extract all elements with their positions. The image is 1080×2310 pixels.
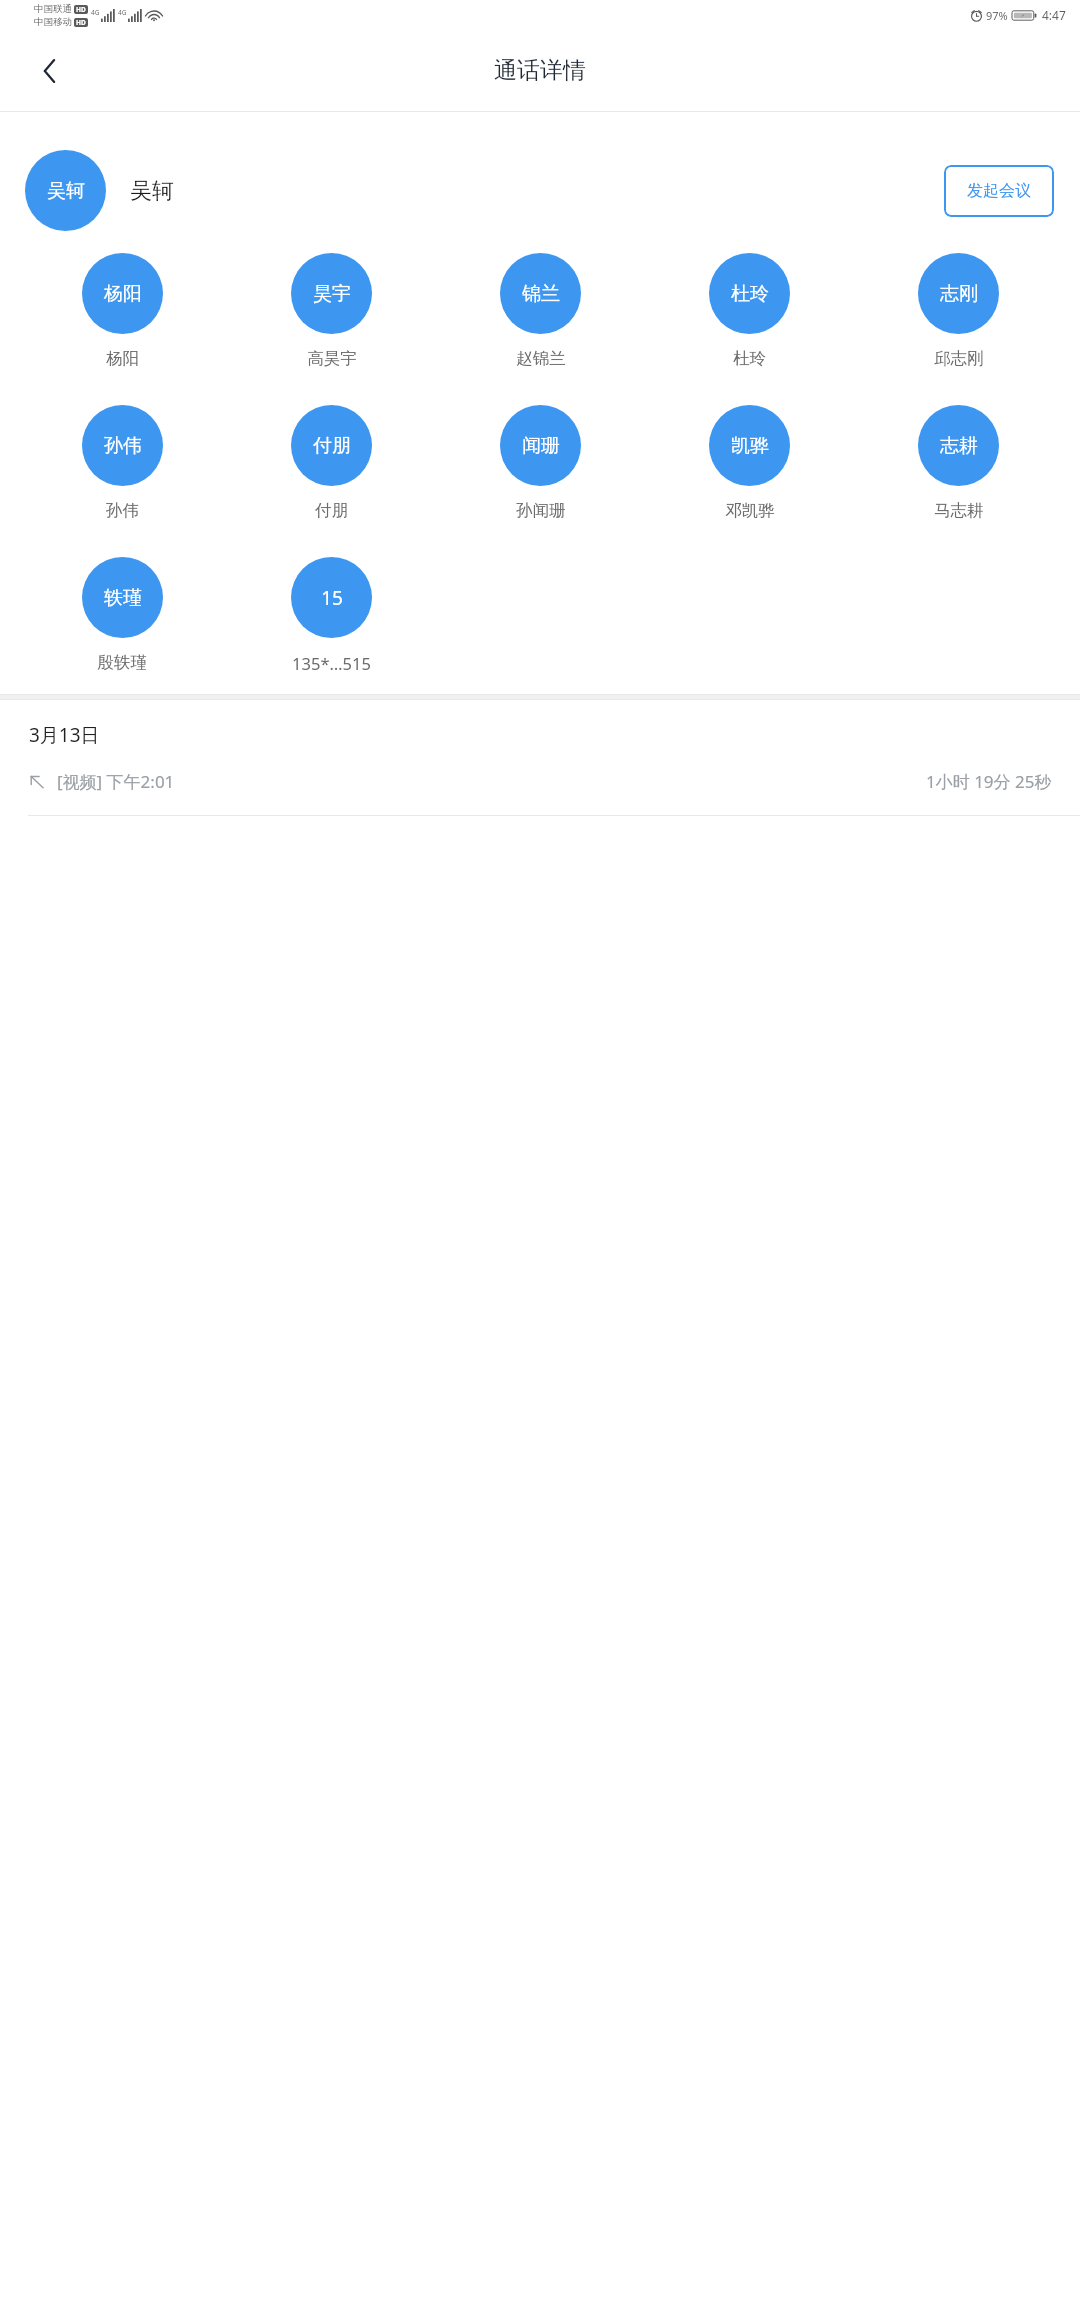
staticText: 发起会议: [967, 181, 1031, 201]
button[interactable]: 锦兰: [436, 251, 645, 371]
staticText: 中国联通: [34, 3, 72, 15]
staticText: 高昊宇: [307, 348, 357, 369]
staticText: 4G: [91, 8, 100, 17]
staticText: 杜玲: [733, 348, 766, 369]
staticText: 马志耕: [934, 500, 984, 521]
button[interactable]: 轶瑾: [17, 555, 227, 675]
button[interactable]: 吴轲: [25, 150, 106, 231]
button[interactable]: 孙伟: [17, 403, 227, 523]
button[interactable]: 志刚: [854, 251, 1063, 371]
button[interactable]: Back: [20, 41, 80, 101]
staticText: 通话详情: [494, 56, 586, 85]
button[interactable]: [视频] 下午2:01: [0, 764, 1080, 803]
staticText: 凯骅: [731, 434, 769, 458]
button[interactable]: 闻珊: [436, 403, 645, 523]
button[interactable]: 凯骅: [645, 403, 854, 523]
staticText: 锦兰: [522, 282, 560, 306]
staticText: 中国移动: [34, 16, 72, 28]
staticText: 杨阳: [104, 282, 142, 306]
staticText: HD: [76, 18, 86, 27]
staticText: HD: [76, 5, 86, 14]
staticText: 4G: [118, 8, 127, 17]
staticText: 15: [321, 585, 343, 611]
staticText: 吴轲: [47, 179, 85, 203]
staticText: 杜玲: [731, 282, 769, 306]
staticText: 135*…515: [292, 652, 371, 674]
staticText: 邱志刚: [934, 348, 984, 369]
staticText: 闻珊: [522, 434, 560, 458]
staticText: 孙伟: [104, 434, 142, 458]
staticText: 邓凯骅: [725, 500, 775, 521]
staticText: 吴轲: [130, 177, 174, 205]
button[interactable]: 15: [227, 555, 436, 676]
staticText: 1小时 19分 25秒: [926, 770, 1052, 793]
button[interactable]: 付朋: [227, 403, 436, 523]
staticText: 付朋: [315, 500, 348, 521]
button[interactable]: 杨阳: [17, 251, 227, 371]
staticText: 3月13日: [29, 722, 100, 748]
staticText: 孙伟: [106, 500, 139, 521]
staticText: 杨阳: [106, 348, 139, 369]
staticText: 殷轶瑾: [97, 652, 147, 673]
staticText: 付朋: [313, 434, 351, 458]
button[interactable]: 杜玲: [645, 251, 854, 371]
staticText: 97%: [986, 8, 1008, 23]
button[interactable]: 发起会议: [944, 165, 1054, 217]
staticText: 志刚: [940, 282, 978, 306]
staticText: [视频] 下午2:01: [57, 770, 175, 793]
button[interactable]: 志耕: [854, 403, 1063, 523]
button[interactable]: 昊宇: [227, 251, 436, 371]
staticText: 4:47: [1042, 7, 1066, 23]
staticText: 轶瑾: [104, 586, 142, 610]
staticText: 孙闻珊: [516, 500, 566, 521]
staticText: 赵锦兰: [516, 348, 566, 369]
staticText: 志耕: [940, 434, 978, 458]
staticText: 昊宇: [313, 282, 351, 306]
